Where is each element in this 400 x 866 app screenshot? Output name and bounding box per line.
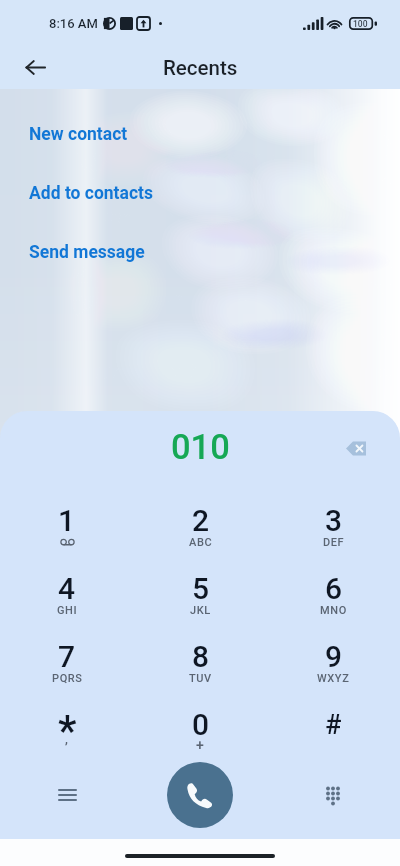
staticText: 8:16 AM	[49, 16, 98, 31]
staticText: 0	[192, 707, 210, 742]
button[interactable]: Dialpad	[309, 771, 357, 819]
button[interactable]: 5	[134, 560, 267, 628]
staticText: #	[325, 709, 342, 741]
staticText: 6	[325, 571, 343, 606]
staticText: 9	[325, 639, 343, 674]
staticText: 3	[325, 503, 343, 538]
button[interactable]: 7	[0, 628, 134, 696]
staticText: TUV	[189, 672, 212, 685]
staticText: 4	[58, 571, 76, 606]
button[interactable]: Backspace	[340, 432, 372, 464]
button[interactable]: 0	[134, 696, 267, 764]
button[interactable]: Call	[167, 762, 233, 828]
button[interactable]: 6	[267, 560, 400, 628]
staticText: +	[196, 737, 205, 753]
button[interactable]: 4	[0, 560, 134, 628]
staticText: ABC	[189, 536, 213, 549]
staticText: 5	[192, 571, 210, 606]
staticText: New contact	[29, 124, 128, 145]
staticText: JKL	[190, 604, 211, 617]
button[interactable]: New contact	[29, 124, 128, 145]
staticText: ,	[65, 731, 69, 746]
button[interactable]: Call history	[43, 771, 91, 819]
staticText: 100	[353, 19, 368, 29]
staticText: Recents	[163, 56, 238, 80]
staticText: 010	[171, 427, 230, 467]
button[interactable]: 3	[267, 492, 400, 560]
staticText: DEF	[323, 536, 345, 549]
button[interactable]: #	[267, 696, 400, 764]
staticText: MNO	[320, 604, 347, 617]
button[interactable]: 9	[267, 628, 400, 696]
staticText: GHI	[57, 604, 78, 617]
staticText: PQRS	[52, 672, 83, 685]
button[interactable]: 2	[134, 492, 267, 560]
staticText: WXYZ	[317, 672, 350, 685]
button[interactable]: 8	[134, 628, 267, 696]
staticText: *	[58, 706, 77, 755]
button[interactable]: Send message	[29, 242, 145, 263]
staticText: Add to contacts	[29, 183, 153, 204]
button[interactable]: Add to contacts	[29, 183, 153, 204]
staticText: Send message	[29, 242, 145, 263]
staticText: 8	[192, 639, 210, 674]
staticText: 7	[58, 639, 76, 674]
button[interactable]: *	[0, 696, 134, 764]
staticText: 2	[192, 503, 210, 538]
button[interactable]: Back	[15, 47, 55, 87]
staticText: 1	[58, 503, 76, 538]
button[interactable]: 1	[0, 492, 134, 560]
